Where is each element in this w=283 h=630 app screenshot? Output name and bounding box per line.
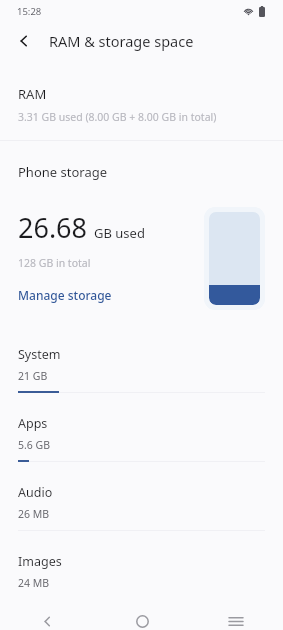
- button[interactable]: Audio: [0, 476, 283, 545]
- staticText: 128 GB in total: [18, 256, 91, 270]
- button[interactable]: Images: [0, 545, 283, 612]
- staticText: RAM & storage space: [49, 31, 194, 51]
- staticText: 21 GB: [18, 369, 48, 383]
- staticText: 26 MB: [18, 507, 50, 521]
- button[interactable]: Home: [95, 612, 189, 630]
- staticText: GB used: [94, 224, 145, 242]
- staticText: Images: [18, 553, 62, 570]
- button[interactable]: System: [0, 338, 283, 407]
- staticText: 15:28: [17, 5, 42, 18]
- button[interactable]: Back: [10, 27, 38, 55]
- staticText: Audio: [18, 484, 53, 501]
- button[interactable]: Manage storage: [18, 286, 112, 304]
- button[interactable]: Apps: [0, 407, 283, 476]
- button[interactable]: Back: [0, 612, 95, 630]
- staticText: RAM: [18, 85, 47, 103]
- staticText: System: [18, 346, 61, 363]
- staticText: Manage storage: [18, 287, 112, 303]
- staticText: 26.68: [18, 209, 88, 246]
- staticText: Phone storage: [18, 163, 108, 181]
- staticText: Apps: [18, 415, 48, 432]
- staticText: 3.31 GB used (8.00 GB + 8.00 GB in total…: [18, 110, 217, 124]
- staticText: 24 MB: [18, 576, 50, 590]
- button[interactable]: Recent apps: [189, 612, 283, 630]
- staticText: 5.6 GB: [18, 438, 51, 452]
